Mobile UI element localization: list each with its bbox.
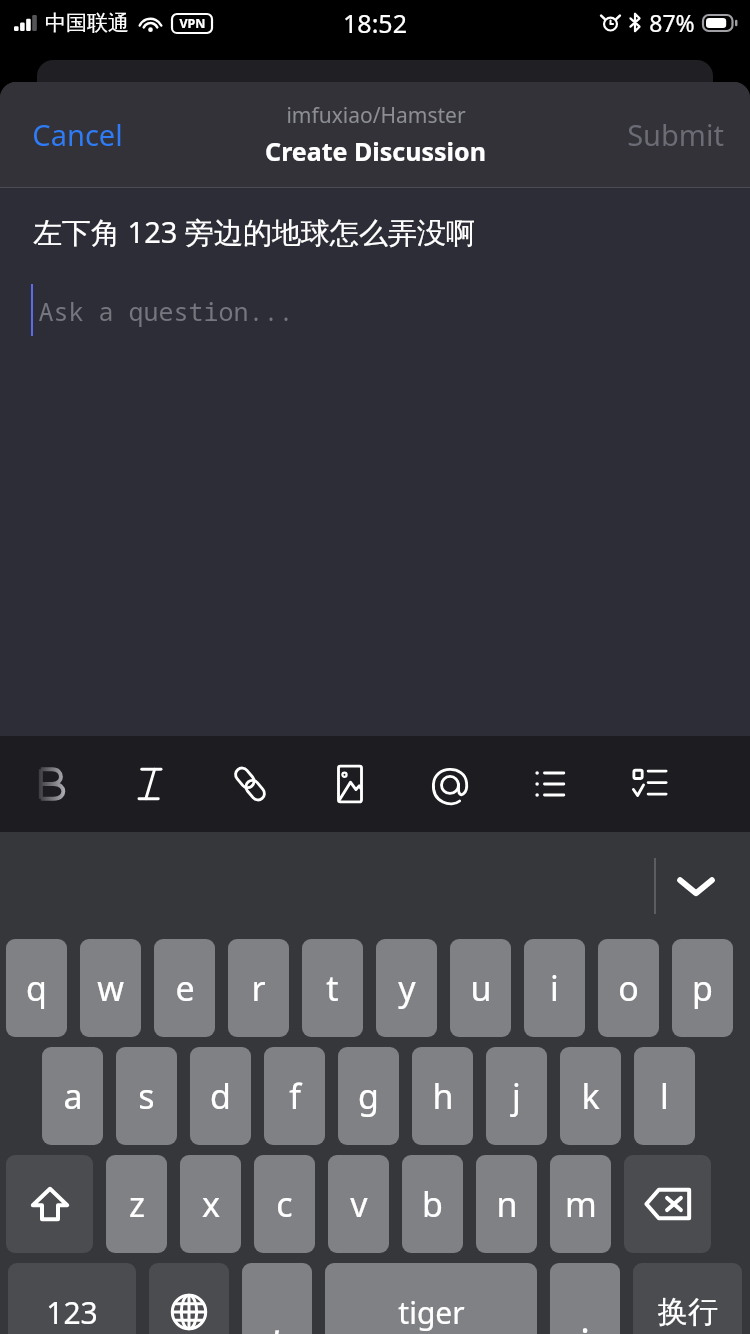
button[interactable]: j [486, 1047, 547, 1145]
button[interactable]: d [190, 1047, 251, 1145]
staticText: t [326, 965, 339, 1011]
staticText: k [581, 1073, 600, 1119]
button[interactable]: k [560, 1047, 621, 1145]
staticText: b [422, 1181, 443, 1227]
button[interactable]: Link [200, 736, 300, 832]
button[interactable]: . [550, 1263, 620, 1334]
button[interactable]: i [524, 939, 585, 1037]
staticText: p [692, 965, 713, 1011]
button[interactable]: Bullet list [500, 736, 600, 832]
button[interactable]: Submit [609, 103, 742, 166]
button[interactable]: 123 [8, 1263, 136, 1334]
button[interactable]: b [402, 1155, 463, 1253]
staticText: Ask a question... [38, 294, 294, 328]
button[interactable]: tiger [325, 1263, 537, 1334]
staticText: j [512, 1073, 521, 1119]
button[interactable]: a [42, 1047, 103, 1145]
staticText: q [26, 965, 47, 1011]
staticText: s [138, 1073, 155, 1119]
staticText: c [276, 1181, 293, 1227]
staticText: d [210, 1073, 231, 1119]
staticText: Submit [627, 115, 724, 154]
button[interactable]: c [254, 1155, 315, 1253]
staticText: 18:52 [343, 6, 407, 40]
staticText: e [175, 965, 195, 1011]
button[interactable]: Image [300, 736, 400, 832]
staticText: w [97, 965, 124, 1011]
staticText: 123 [46, 1292, 98, 1333]
staticText: 中国联通 [45, 10, 129, 36]
staticText: . [580, 1297, 590, 1334]
button[interactable]: h [412, 1047, 473, 1145]
staticText: Cancel [32, 115, 123, 154]
staticText: VPN [179, 15, 206, 32]
staticText: f [289, 1073, 301, 1119]
staticText: v [350, 1181, 368, 1227]
staticText: x [202, 1181, 220, 1227]
staticText: o [618, 965, 639, 1011]
staticText: g [358, 1073, 379, 1119]
button[interactable]: Mention [400, 736, 500, 832]
button[interactable]: Italic [100, 736, 200, 832]
button[interactable]: z [106, 1155, 167, 1253]
button[interactable]: o [598, 939, 659, 1037]
button[interactable]: q [6, 939, 67, 1037]
staticText: Create Discussion [265, 134, 486, 168]
button[interactable]: , [242, 1263, 312, 1334]
button[interactable]: Hide keyboard [662, 852, 730, 920]
staticText: 左下角 123 旁边的地球怎么弄没啊 [33, 212, 475, 252]
button[interactable]: n [476, 1155, 537, 1253]
button[interactable]: m [550, 1155, 611, 1253]
button[interactable]: Cancel [10, 103, 145, 166]
button[interactable]: 换行 [633, 1263, 742, 1334]
staticText: z [129, 1181, 145, 1227]
button[interactable]: v [328, 1155, 389, 1253]
button[interactable]: Backspace [624, 1155, 711, 1253]
staticText: tiger [398, 1292, 465, 1333]
staticText: m [565, 1181, 597, 1227]
staticText: h [432, 1073, 454, 1119]
staticText: u [470, 965, 492, 1011]
staticText: , [272, 1299, 282, 1334]
button[interactable]: t [302, 939, 363, 1037]
button[interactable]: Shift [6, 1155, 93, 1253]
button[interactable]: w [80, 939, 141, 1037]
staticText: l [660, 1073, 669, 1119]
staticText: a [63, 1073, 83, 1119]
staticText: imfuxiao/Hamster [286, 101, 466, 130]
button[interactable]: s [116, 1047, 177, 1145]
staticText: 换行 [658, 1293, 718, 1331]
button[interactable]: u [450, 939, 511, 1037]
button[interactable]: p [672, 939, 733, 1037]
staticText: i [550, 965, 559, 1011]
staticText: n [496, 1181, 518, 1227]
button[interactable]: x [180, 1155, 241, 1253]
staticText: y [398, 965, 416, 1011]
button[interactable]: Bold [0, 736, 100, 832]
button[interactable]: f [264, 1047, 325, 1145]
button[interactable]: r [228, 939, 289, 1037]
button[interactable]: l [634, 1047, 695, 1145]
button[interactable]: e [154, 939, 215, 1037]
button[interactable]: g [338, 1047, 399, 1145]
staticText: 87% [649, 7, 695, 38]
button[interactable]: y [376, 939, 437, 1037]
button[interactable]: Task list [600, 736, 700, 832]
button[interactable]: Switch language [149, 1263, 229, 1334]
staticText: r [251, 965, 266, 1011]
